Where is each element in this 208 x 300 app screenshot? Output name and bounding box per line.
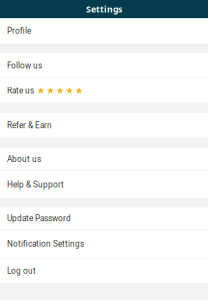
button[interactable]: Profile	[0, 18, 208, 44]
staticText: Notification Settings	[7, 239, 84, 249]
button[interactable]: Follow us	[0, 53, 208, 78]
staticText: Refer & Earn	[7, 120, 52, 130]
button[interactable]: Log out	[0, 259, 208, 283]
button[interactable]: Refer & Earn	[0, 113, 208, 138]
staticText: Rate us	[7, 86, 34, 95]
staticText: Follow us	[7, 61, 42, 70]
staticText: Settings	[86, 3, 122, 15]
button[interactable]: About us	[0, 148, 208, 170]
button[interactable]: Notification Settings	[0, 230, 208, 258]
staticText: About us	[7, 154, 41, 164]
button[interactable]: Help & Support	[0, 171, 208, 198]
button[interactable]: Update Password	[0, 207, 208, 229]
staticText: Log out	[7, 266, 36, 276]
staticText: Profile	[7, 26, 31, 36]
staticText: Update Password	[7, 213, 71, 223]
button[interactable]: Rate us	[0, 78, 208, 103]
staticText: Help & Support	[7, 180, 64, 189]
